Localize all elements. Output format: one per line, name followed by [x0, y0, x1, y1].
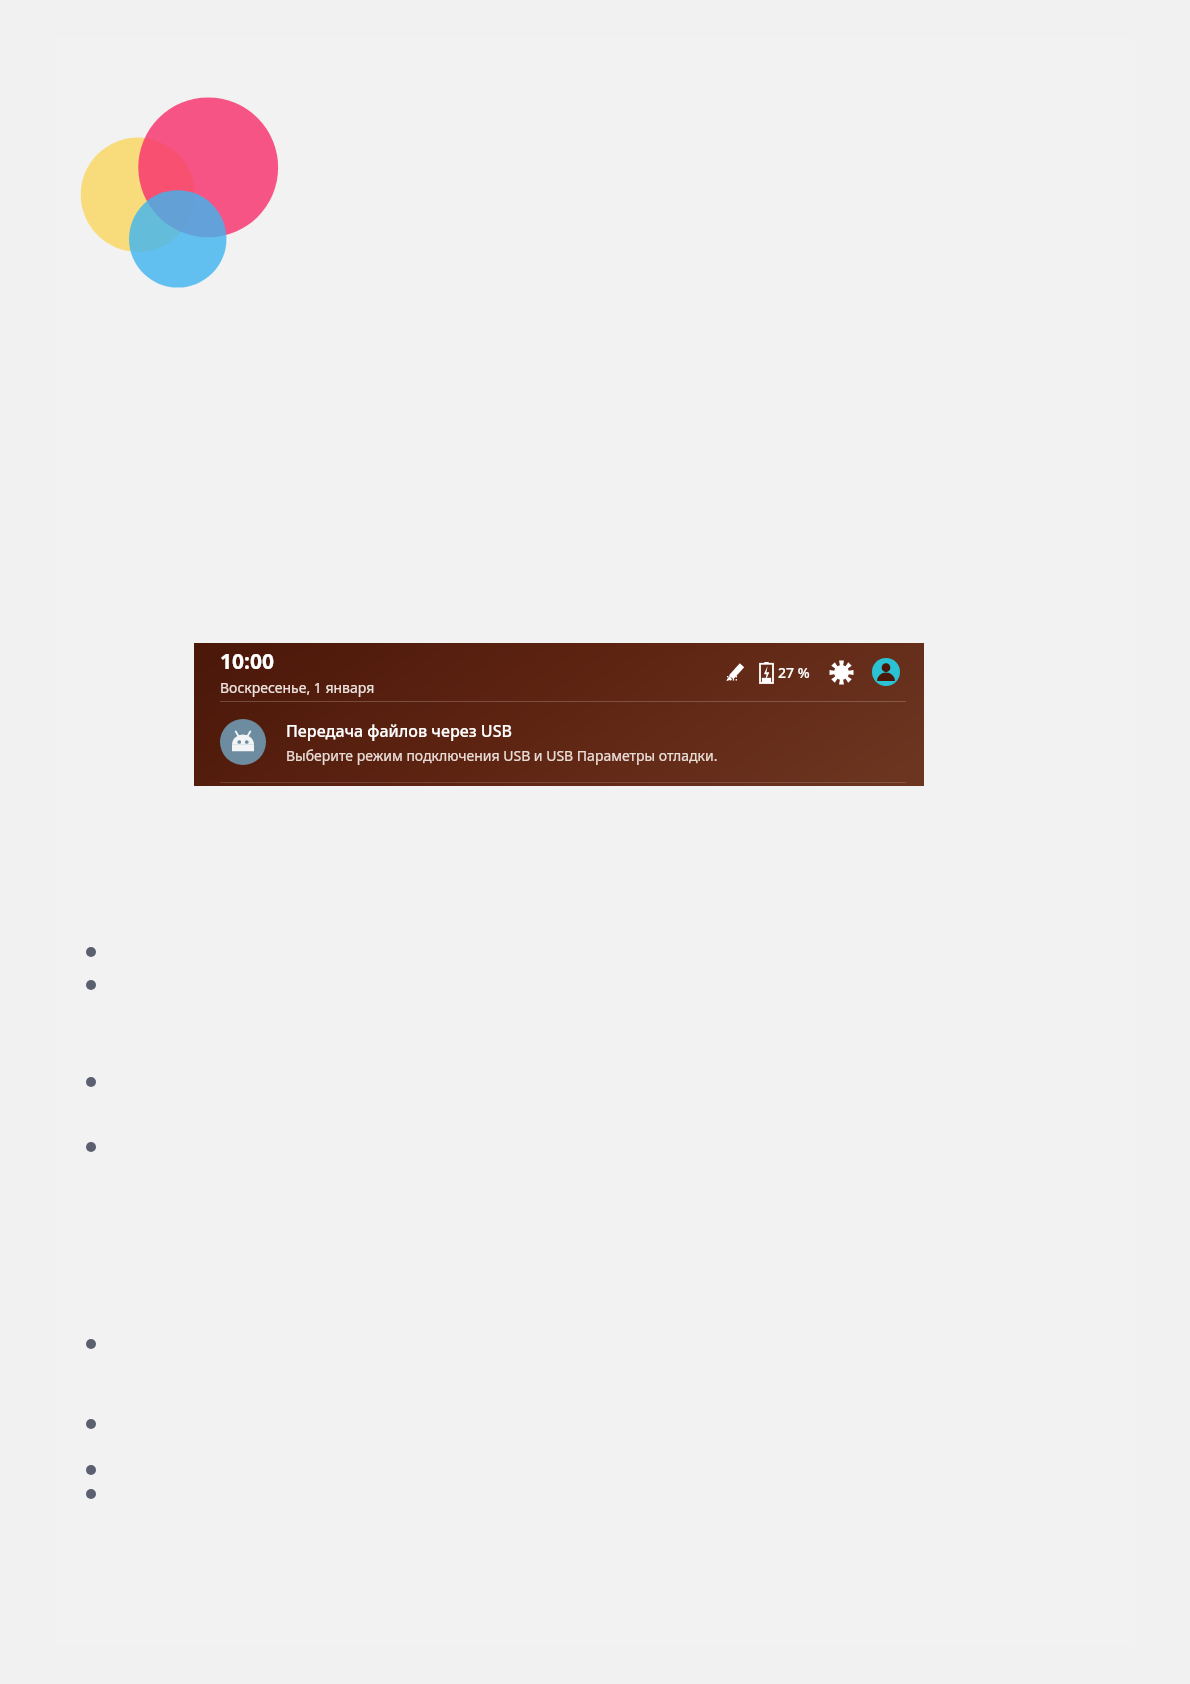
staticText: 10:00 — [220, 647, 274, 676]
button[interactable]: Settings — [824, 655, 858, 689]
staticText: 27 % — [778, 663, 810, 682]
button[interactable]: Battery 27 percent — [760, 662, 810, 683]
button[interactable]: Передача файлов через USB — [194, 702, 924, 782]
staticText: Передача файлов через USB — [286, 720, 512, 742]
staticText: Воскресенье, 1 января — [220, 678, 375, 697]
staticText: Выберите режим подключения USB и USB Пар… — [286, 746, 718, 765]
button[interactable]: Edit quick settings — [720, 657, 750, 687]
button[interactable]: User profile — [870, 656, 902, 688]
